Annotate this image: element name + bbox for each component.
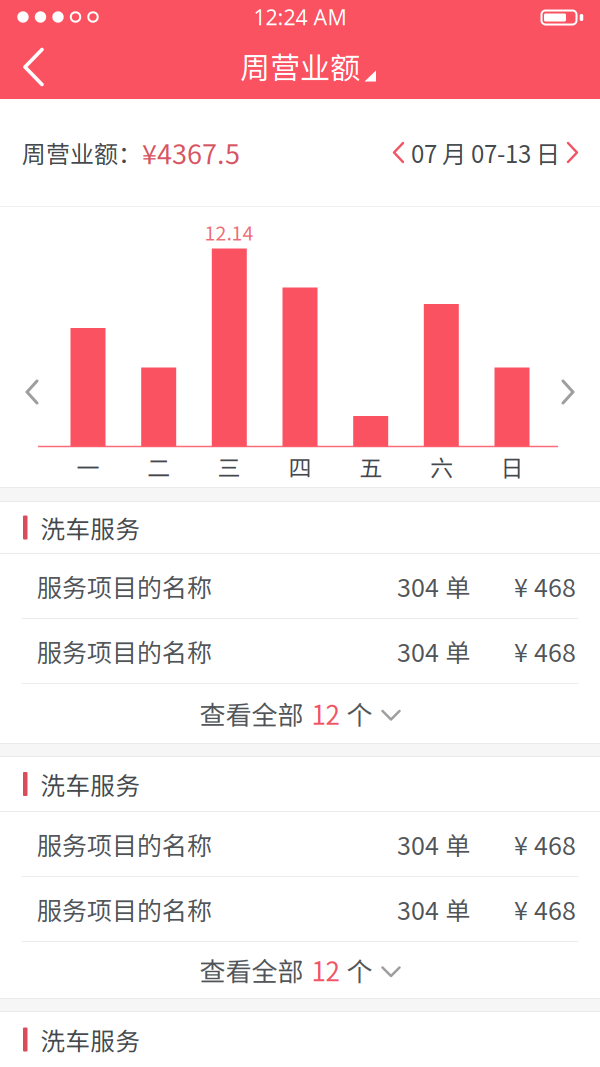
staticText: ¥ 468 bbox=[514, 826, 576, 862]
staticText: 12 bbox=[311, 951, 339, 989]
staticText: 304 单 bbox=[397, 826, 470, 862]
staticText: 304 单 bbox=[397, 891, 470, 927]
staticText: 服务项目的名称 bbox=[37, 826, 212, 862]
staticText: 服务项目的名称 bbox=[37, 633, 212, 669]
staticText: 07 月 07-13 日 bbox=[411, 135, 560, 170]
staticText: 12:24 AM bbox=[253, 3, 346, 31]
staticText: 12 bbox=[311, 695, 339, 732]
staticText: 周营业额： bbox=[22, 135, 142, 170]
staticText: 五 bbox=[359, 450, 382, 483]
staticText: ¥ 468 bbox=[514, 568, 576, 604]
staticText: 日 bbox=[501, 450, 524, 483]
staticText: 304 单 bbox=[397, 633, 470, 669]
staticText: 个 bbox=[346, 951, 372, 989]
staticText: 304 单 bbox=[397, 568, 470, 604]
staticText: 二 bbox=[147, 450, 170, 483]
staticText: 四 bbox=[288, 450, 311, 483]
staticText: ¥ 468 bbox=[514, 633, 576, 669]
staticText: 12.14 bbox=[204, 218, 253, 246]
staticText: 三 bbox=[218, 450, 241, 483]
staticText: ¥4367.5 bbox=[142, 133, 240, 172]
staticText: 查看全部 bbox=[199, 951, 303, 989]
staticText: 一 bbox=[76, 450, 99, 483]
staticText: 个 bbox=[346, 695, 372, 732]
staticText: 服务项目的名称 bbox=[37, 891, 212, 927]
staticText: 查看全部 bbox=[199, 695, 303, 732]
staticText: 洗车服务 bbox=[40, 1022, 140, 1057]
staticText: 周营业额 bbox=[240, 44, 360, 88]
staticText: 六 bbox=[430, 450, 453, 483]
staticText: 服务项目的名称 bbox=[37, 568, 212, 604]
staticText: ¥ 468 bbox=[514, 891, 576, 927]
staticText: 洗车服务 bbox=[40, 766, 140, 802]
staticText: 洗车服务 bbox=[40, 510, 140, 545]
